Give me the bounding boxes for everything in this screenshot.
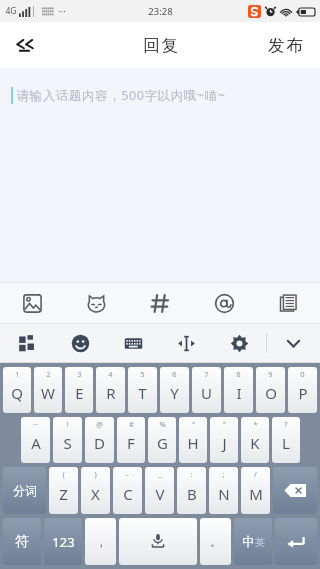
staticText: Q (11, 383, 23, 403)
staticText: S (63, 433, 72, 453)
button[interactable]: : (177, 467, 206, 514)
button[interactable]: 2 (34, 367, 62, 413)
button[interactable]: Add image (0, 283, 64, 323)
button[interactable]: 请输入话题内容，500字以内哦~喵~ (0, 68, 320, 283)
button[interactable]: ~ (21, 417, 50, 463)
button[interactable]: Keyboard layout (107, 324, 160, 362)
button[interactable]: ” (210, 417, 238, 463)
button[interactable]: ， (85, 518, 116, 565)
button[interactable]: “ (179, 417, 207, 463)
button[interactable]: ) (81, 467, 110, 514)
staticText: 23:28 (148, 5, 173, 18)
button[interactable]: Back (0, 22, 52, 68)
staticText: 2 (46, 369, 51, 379)
staticText: 发布 (267, 35, 304, 56)
staticText: V (155, 484, 165, 504)
staticText: # (129, 419, 134, 429)
staticText: M (249, 484, 263, 504)
staticText: F (127, 433, 135, 453)
button[interactable]: _ (145, 467, 174, 514)
button[interactable]: Space voice input (119, 518, 197, 565)
button[interactable]: Draft (256, 283, 320, 323)
button[interactable]: 123 (44, 518, 82, 565)
staticText: - (126, 469, 129, 479)
staticText: 5 (140, 369, 145, 379)
staticText: % (159, 419, 166, 429)
button[interactable]: Mention (192, 283, 256, 323)
button[interactable]: 7 (192, 367, 221, 413)
button[interactable]: 分词 (3, 467, 46, 514)
staticText: ~ (33, 419, 38, 429)
staticText: Y (170, 383, 179, 403)
staticText: ; (222, 469, 225, 479)
staticText: : (190, 469, 193, 479)
button[interactable]: ( (49, 467, 78, 514)
staticText: ··· (58, 5, 66, 17)
button[interactable]: 5 (128, 367, 157, 413)
button[interactable]: @ (85, 417, 114, 463)
staticText: ) (94, 469, 97, 479)
staticText: L (282, 433, 290, 453)
button[interactable]: 3 (65, 367, 93, 413)
button[interactable]: Emoji sticker (64, 283, 128, 323)
button[interactable]: 9 (256, 367, 285, 413)
staticText: “ (192, 419, 195, 429)
staticText: ” (223, 419, 226, 429)
button[interactable]: 发布 (251, 22, 320, 68)
button[interactable]: 。 (200, 518, 231, 565)
button[interactable]: / (241, 467, 270, 514)
button[interactable]: Switch Chinese English (234, 518, 272, 565)
staticText: 123 (52, 533, 75, 551)
button[interactable]: 6 (160, 367, 189, 413)
staticText: K (250, 433, 260, 453)
staticText: 6 (172, 369, 177, 379)
button[interactable]: Backspace (273, 467, 317, 514)
staticText: 分词 (13, 483, 37, 498)
staticText: R (106, 383, 116, 403)
button[interactable]: ? (272, 417, 300, 463)
staticText: 英 (255, 536, 265, 549)
staticText: * (253, 419, 258, 429)
staticText: B (187, 484, 197, 504)
staticText: ! (66, 419, 69, 429)
staticText: 7 (204, 369, 209, 379)
staticText: 中 (242, 534, 255, 550)
staticText: E (75, 383, 84, 403)
button[interactable]: Emoji (54, 324, 107, 362)
button[interactable]: Settings (213, 324, 266, 362)
button[interactable]: 符 (3, 518, 41, 565)
staticText: 0 (300, 369, 305, 379)
staticText: I (236, 383, 242, 403)
staticText: ? (284, 419, 288, 429)
staticText: 4 (108, 369, 113, 379)
staticText: C (123, 484, 133, 504)
staticText: 。 (210, 534, 222, 549)
staticText: A (31, 433, 41, 453)
button[interactable]: 0 (288, 367, 317, 413)
button[interactable]: 8 (224, 367, 253, 413)
staticText: _ (158, 469, 162, 479)
staticText: W (41, 383, 55, 403)
button[interactable]: Hide keyboard (267, 324, 320, 362)
staticText: ， (95, 534, 107, 549)
button[interactable]: - (113, 467, 142, 514)
button[interactable]: # (117, 417, 145, 463)
button[interactable]: Enter (275, 518, 317, 565)
staticText: 4G (5, 5, 17, 17)
staticText: G (157, 433, 168, 453)
button[interactable]: Move cursor (160, 324, 213, 362)
staticText: 9 (268, 369, 273, 379)
button[interactable]: Topic (128, 283, 192, 323)
button[interactable]: ! (53, 417, 82, 463)
button[interactable]: Keyboard apps (0, 324, 54, 362)
button[interactable]: % (148, 417, 176, 463)
staticText: P (298, 383, 308, 403)
staticText: T (138, 383, 147, 403)
button[interactable]: ; (209, 467, 238, 514)
staticText: U (201, 383, 212, 403)
staticText: 符 (15, 533, 29, 551)
button[interactable]: 1 (3, 367, 31, 413)
button[interactable]: * (241, 417, 269, 463)
staticText: 1 (15, 369, 20, 379)
button[interactable]: 4 (96, 367, 125, 413)
